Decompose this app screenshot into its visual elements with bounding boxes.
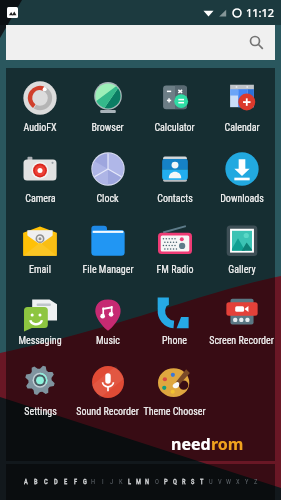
button[interactable]: T [197, 464, 206, 500]
staticText: Music [96, 335, 120, 347]
staticText: Email [29, 264, 51, 276]
staticText: A [24, 478, 28, 486]
staticText: Gallery [228, 264, 256, 276]
staticText: X [236, 478, 240, 486]
button[interactable]: Q [170, 464, 179, 500]
staticText: Contacts [157, 193, 193, 205]
staticText: Settings [24, 406, 57, 418]
staticText: L [128, 478, 132, 486]
button[interactable]: Email [6, 220, 74, 291]
button[interactable]: N [143, 464, 152, 500]
button[interactable]: Settings [6, 362, 74, 433]
button[interactable]: V [215, 464, 224, 500]
button[interactable]: File Manager [74, 220, 141, 291]
staticText: 11:12 [246, 5, 275, 20]
staticText: Calculator [154, 122, 195, 134]
button[interactable]: J [107, 464, 116, 500]
button[interactable]: A [21, 464, 31, 500]
button[interactable]: Camera [6, 149, 74, 220]
button[interactable]: O [152, 464, 161, 500]
staticText: rom [211, 433, 244, 455]
staticText: Downloads [220, 193, 264, 205]
button[interactable]: Music [74, 291, 141, 362]
staticText: I [102, 478, 104, 486]
staticText: H [91, 478, 96, 486]
button[interactable]: B [31, 464, 41, 500]
staticText: Camera [25, 193, 56, 205]
button[interactable]: I [98, 464, 107, 500]
staticText: Y [245, 478, 249, 486]
button[interactable]: FM Radio [141, 220, 208, 291]
staticText: S [191, 478, 195, 486]
staticText: O [155, 478, 159, 486]
staticText: G [83, 478, 87, 486]
button[interactable]: Contacts [141, 149, 208, 220]
button[interactable]: Theme Chooser [141, 362, 208, 433]
button[interactable]: H [89, 464, 98, 500]
staticText: Sound Recorder [76, 406, 139, 418]
staticText: U [209, 478, 213, 486]
button[interactable]: F [71, 464, 80, 500]
button[interactable]: Screen Recorder [208, 291, 275, 362]
staticText: T [200, 478, 204, 486]
button[interactable]: Z [251, 464, 260, 500]
staticText: C [44, 478, 48, 486]
staticText: Calendar [224, 122, 260, 134]
button[interactable]: D [51, 464, 61, 500]
staticText: Screen Recorder [209, 335, 274, 347]
button[interactable]: Clock [74, 149, 141, 220]
staticText: FM Radio [156, 264, 194, 276]
staticText: B [34, 478, 38, 486]
button[interactable]: G [80, 464, 89, 500]
button[interactable]: S [188, 464, 197, 500]
staticText: Phone [162, 335, 187, 347]
staticText: Q [173, 478, 177, 486]
button[interactable]: Gallery [208, 220, 275, 291]
button[interactable]: W [224, 464, 233, 500]
staticText: AudioFX [23, 122, 57, 134]
button[interactable]: AudioFX [6, 78, 74, 149]
button[interactable]: R [179, 464, 188, 500]
staticText: F [74, 478, 78, 486]
button[interactable]: E [61, 464, 71, 500]
button[interactable]: M [134, 464, 143, 500]
staticText: J [110, 478, 114, 486]
button[interactable]: L [125, 464, 134, 500]
staticText: Z [254, 478, 258, 486]
staticText: E [64, 478, 68, 486]
staticText: W [226, 478, 231, 486]
staticText: V [218, 478, 222, 486]
staticText: File Manager [82, 264, 134, 276]
button[interactable]: Calculator [141, 78, 208, 149]
button[interactable]: C [41, 464, 51, 500]
button[interactable]: Messaging [6, 291, 74, 362]
button[interactable]: X [233, 464, 242, 500]
staticText: Clock [96, 193, 119, 205]
staticText: P [164, 478, 168, 486]
button[interactable]: P [161, 464, 170, 500]
button[interactable]: Calendar [208, 78, 275, 149]
button[interactable]: Sound Recorder [74, 362, 141, 433]
staticText: D [54, 478, 58, 486]
staticText: Messaging [18, 335, 62, 347]
button[interactable]: Downloads [208, 149, 275, 220]
button[interactable]: Y [242, 464, 251, 500]
staticText: R [182, 478, 186, 486]
staticText: Theme Chooser [143, 406, 206, 418]
button[interactable]: Phone [141, 291, 208, 362]
staticText: M [136, 478, 141, 486]
staticText: K [119, 478, 123, 486]
staticText: Browser [91, 122, 124, 134]
staticText: need [171, 433, 211, 455]
button[interactable]: U [206, 464, 215, 500]
button[interactable]: K [116, 464, 125, 500]
button[interactable]: Search [6, 25, 275, 60]
other: Search [249, 35, 264, 50]
staticText: N [145, 478, 150, 486]
button[interactable]: Browser [74, 78, 141, 149]
